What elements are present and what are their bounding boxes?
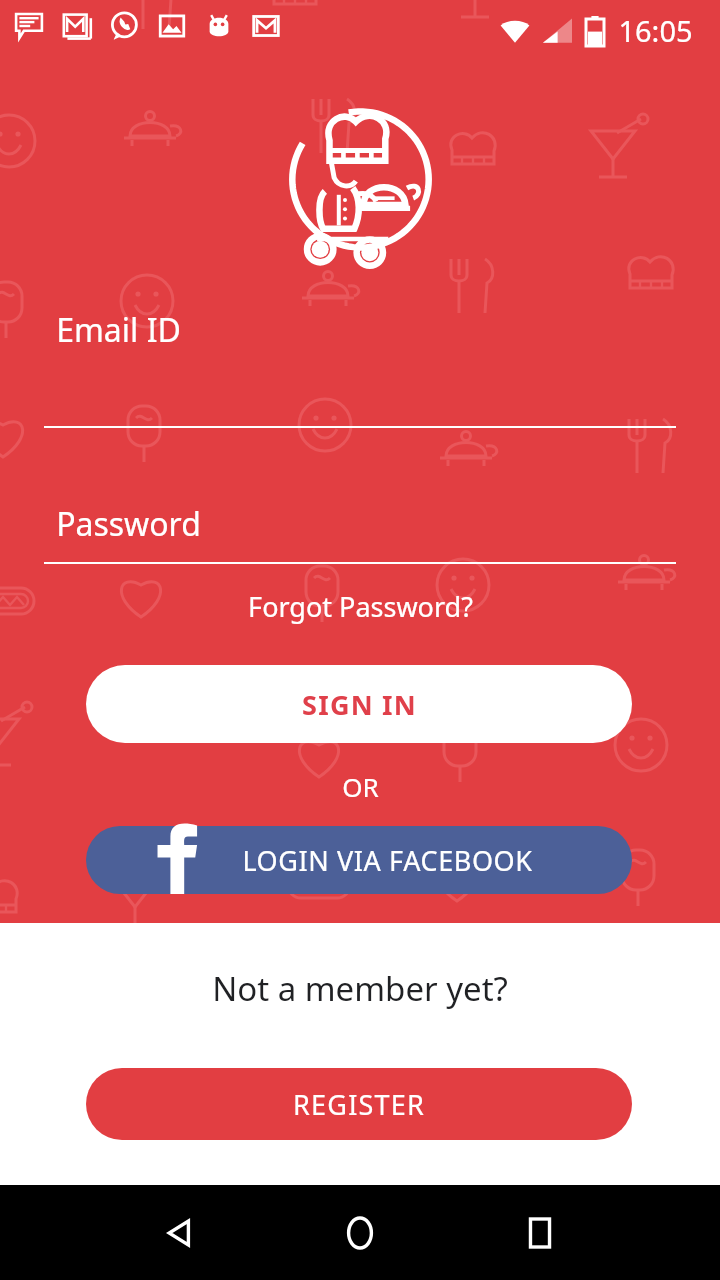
button[interactable]: Forgot Password? <box>0 586 720 626</box>
staticText: Email ID <box>56 308 181 352</box>
staticText: SIGN IN <box>302 686 417 723</box>
button[interactable]: Recent apps <box>480 1185 600 1280</box>
staticText: LOGIN VIA FACEBOOK <box>242 842 533 879</box>
button[interactable]: Back <box>120 1185 240 1280</box>
staticText: Forgot Password? <box>248 588 473 625</box>
button[interactable] <box>86 826 632 894</box>
button[interactable]: SIGN IN <box>86 665 632 743</box>
button[interactable]: Home <box>300 1185 420 1280</box>
staticText: REGISTER <box>293 1086 425 1123</box>
staticText: 16:05 <box>618 11 693 50</box>
staticText: Not a member yet? <box>212 966 508 1011</box>
staticText: OR <box>342 769 379 804</box>
button[interactable]: REGISTER <box>86 1068 632 1140</box>
staticText: Password <box>56 502 201 546</box>
